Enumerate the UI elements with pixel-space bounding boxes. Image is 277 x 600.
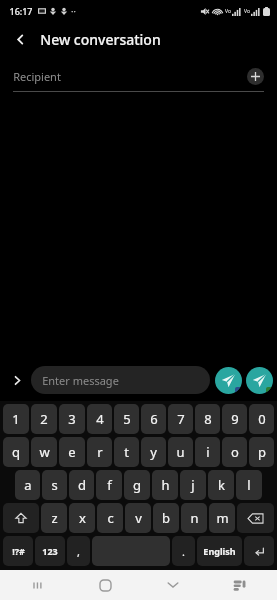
button[interactable] bbox=[92, 536, 170, 566]
button[interactable]: v bbox=[125, 503, 151, 533]
button[interactable]: n bbox=[181, 503, 207, 533]
button[interactable]: Send with SIM 1 bbox=[215, 367, 242, 394]
staticText: 2 bbox=[40, 410, 48, 428]
staticText: c bbox=[107, 509, 114, 527]
button[interactable]: o bbox=[222, 437, 247, 467]
button[interactable]: 9 bbox=[222, 404, 247, 434]
staticText: h bbox=[161, 476, 170, 494]
button[interactable]: 4 bbox=[87, 404, 112, 434]
staticText: 8 bbox=[204, 410, 212, 428]
staticText: 123 bbox=[42, 545, 58, 557]
button[interactable]: u bbox=[168, 437, 193, 467]
button[interactable]: , bbox=[67, 536, 90, 566]
button[interactable]: Keyboard settings bbox=[206, 570, 273, 600]
staticText: English bbox=[203, 545, 236, 557]
staticText: , bbox=[77, 544, 80, 559]
button[interactable]: z bbox=[41, 503, 67, 533]
button[interactable] bbox=[3, 503, 39, 533]
button[interactable]: k bbox=[208, 470, 234, 500]
button[interactable]: c bbox=[97, 503, 123, 533]
staticText: 0 bbox=[258, 410, 266, 428]
button[interactable]: Send with SIM 2 bbox=[246, 367, 273, 394]
button[interactable]: 123 bbox=[35, 536, 65, 566]
button[interactable]: f bbox=[96, 470, 122, 500]
staticText: p bbox=[258, 443, 266, 461]
button[interactable]: s bbox=[42, 470, 67, 500]
staticText: . bbox=[182, 544, 185, 559]
button[interactable]: r bbox=[87, 437, 112, 467]
staticText: !?# bbox=[12, 545, 25, 557]
staticText: d bbox=[78, 476, 86, 494]
button[interactable]: 2 bbox=[31, 404, 57, 434]
button[interactable]: y bbox=[141, 437, 166, 467]
button[interactable]: . bbox=[172, 536, 195, 566]
button[interactable]: m bbox=[209, 503, 235, 533]
staticText: 16:17 bbox=[9, 5, 33, 17]
staticText: v bbox=[135, 509, 142, 527]
staticText: o bbox=[231, 443, 239, 461]
button[interactable]: Recipient bbox=[13, 65, 264, 87]
staticText: 7 bbox=[177, 410, 185, 428]
staticText: g bbox=[133, 476, 141, 494]
staticText: w bbox=[39, 443, 50, 461]
button[interactable]: !?# bbox=[3, 536, 33, 566]
staticText: f bbox=[107, 476, 112, 494]
button[interactable]: 1 bbox=[3, 404, 29, 434]
staticText: y bbox=[150, 443, 157, 461]
button[interactable]: 0 bbox=[249, 404, 274, 434]
button[interactable]: 3 bbox=[59, 404, 85, 434]
button[interactable]: Recent apps bbox=[4, 570, 72, 600]
staticText: 5 bbox=[123, 410, 131, 428]
staticText: 9 bbox=[231, 410, 239, 428]
button[interactable] bbox=[244, 536, 274, 566]
button[interactable]: Back bbox=[6, 25, 34, 53]
button[interactable]: p bbox=[249, 437, 274, 467]
staticText: e bbox=[68, 443, 76, 461]
button[interactable]: x bbox=[69, 503, 95, 533]
button[interactable]: q bbox=[3, 437, 29, 467]
button[interactable]: e bbox=[59, 437, 85, 467]
button[interactable]: a bbox=[15, 470, 40, 500]
button[interactable] bbox=[237, 503, 274, 533]
button[interactable]: g bbox=[124, 470, 150, 500]
button[interactable]: Hide keyboard bbox=[139, 570, 206, 600]
button[interactable]: Enter message bbox=[31, 366, 210, 394]
button[interactable]: 6 bbox=[141, 404, 166, 434]
staticText: t bbox=[124, 443, 129, 461]
button[interactable]: English bbox=[197, 536, 242, 566]
staticText: m bbox=[216, 509, 229, 527]
staticText: q bbox=[12, 443, 20, 461]
staticText: r bbox=[97, 443, 103, 461]
staticText: 4 bbox=[96, 410, 104, 428]
staticText: z bbox=[51, 509, 58, 527]
staticText: i bbox=[206, 443, 210, 461]
staticText: 1 bbox=[12, 410, 20, 428]
staticText: u bbox=[176, 443, 185, 461]
staticText: j bbox=[191, 476, 195, 494]
staticText: l bbox=[247, 476, 251, 494]
staticText: New conversation bbox=[40, 30, 161, 49]
button[interactable]: d bbox=[69, 470, 94, 500]
staticText: 6 bbox=[150, 410, 158, 428]
button[interactable]: 7 bbox=[168, 404, 193, 434]
button[interactable]: w bbox=[31, 437, 57, 467]
button[interactable]: Add recipient bbox=[247, 68, 264, 85]
button[interactable]: b bbox=[153, 503, 179, 533]
staticText: Enter message bbox=[42, 373, 119, 388]
staticText: Vo bbox=[225, 8, 231, 15]
button[interactable]: t bbox=[114, 437, 139, 467]
staticText: 3 bbox=[68, 410, 76, 428]
staticText: x bbox=[79, 509, 86, 527]
button[interactable]: 5 bbox=[114, 404, 139, 434]
button[interactable]: l bbox=[236, 470, 262, 500]
button[interactable]: h bbox=[152, 470, 178, 500]
button[interactable]: Home bbox=[72, 570, 139, 600]
staticText: k bbox=[218, 476, 225, 494]
button[interactable]: Expand bbox=[6, 369, 28, 391]
button[interactable]: j bbox=[180, 470, 206, 500]
staticText: Vo bbox=[244, 8, 250, 15]
button[interactable]: 8 bbox=[195, 404, 220, 434]
staticText: a bbox=[24, 476, 32, 494]
button[interactable]: i bbox=[195, 437, 220, 467]
staticText: ·· bbox=[71, 5, 76, 17]
